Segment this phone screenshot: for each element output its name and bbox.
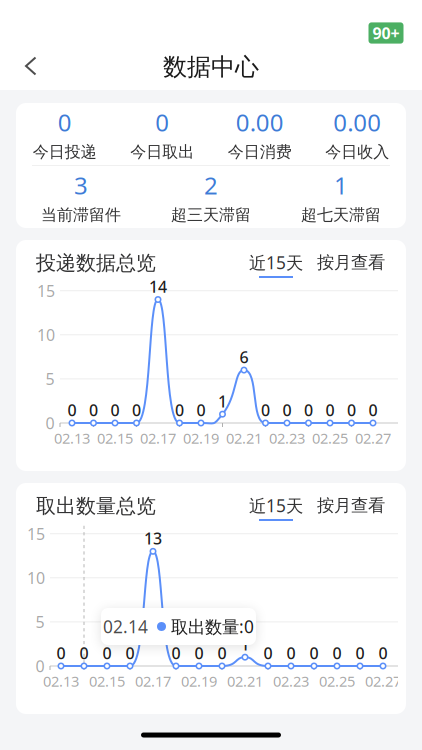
staticText: 0 [125,642,134,664]
button[interactable]: 按月查看 [303,495,385,520]
staticText: 02.19 [183,428,219,448]
staticText: 02.27 [365,671,401,691]
staticText: 0 [263,642,272,664]
staticText: 取出数量总览 [36,494,156,518]
staticText: 02.17 [140,428,176,448]
staticText: 02.19 [181,671,217,691]
staticText: 1 [218,391,227,412]
staticText: 0.00 [333,106,381,138]
staticText: 0 [35,655,44,677]
staticText: 0 [79,642,88,664]
staticText: 02.23 [269,428,305,448]
staticText: 6 [239,346,248,368]
staticText: 02.21 [226,428,262,448]
staticText: 10 [27,567,45,588]
staticText: 02.17 [135,671,171,691]
staticText: 超七天滞留 [301,205,381,225]
staticText: 近15天 [249,494,303,517]
staticText: 数据中心 [163,52,259,82]
staticText: 1 [334,169,348,201]
staticText: 取出数量:0 [171,615,254,638]
button[interactable]: 按月查看 [303,252,385,277]
staticText: 0 [286,642,295,664]
staticText: 0 [309,642,318,664]
staticText: 02.27 [355,428,391,448]
staticText: 02.21 [227,671,263,691]
button[interactable]: Back [9,44,53,88]
staticText: 今日投递 [33,142,97,162]
staticText: 0 [67,399,76,421]
staticText: 2 [204,169,218,201]
staticText: 超三天滞留 [171,205,251,225]
staticText: 0 [355,642,364,664]
staticText: 0.00 [236,106,284,138]
staticText: 0 [304,399,313,421]
staticText: 0 [102,642,111,664]
staticText: 1 [240,634,249,655]
staticText: 0 [282,399,291,421]
button[interactable]: 近15天 [249,494,303,521]
staticText: 15 [37,280,55,301]
staticText: 0 [347,399,356,421]
staticText: 02.25 [319,671,355,691]
staticText: 0 [45,412,54,434]
staticText: 15 [27,523,45,544]
staticText: 今日消费 [228,142,292,162]
staticText: 0 [110,399,119,421]
staticText: 02.15 [89,671,125,691]
staticText: 5 [35,611,44,632]
staticText: 10 [37,324,55,345]
staticText: 0 [171,642,180,664]
staticText: 02.14 [103,615,148,638]
staticText: 今日收入 [325,142,389,162]
staticText: 0 [194,642,203,664]
staticText: 0 [368,399,377,421]
staticText: 按月查看 [317,495,385,516]
staticText: 0 [56,642,65,664]
staticText: 0 [132,399,141,421]
staticText: 近15天 [249,251,303,274]
staticText: 按月查看 [317,252,385,273]
staticText: 02.13 [54,428,90,448]
staticText: 0 [261,399,270,421]
staticText: 90+ [372,22,399,44]
staticText: 今日取出 [130,142,194,162]
staticText: 投递数据总览 [36,251,156,275]
staticText: 0 [196,399,205,421]
staticText: 0 [378,642,387,664]
staticText: 0 [332,642,341,664]
staticText: 02.25 [312,428,348,448]
staticText: 0 [155,106,169,138]
button[interactable]: 近15天 [249,251,303,278]
staticText: 0 [325,399,334,421]
staticText: 5 [45,368,54,389]
staticText: 13 [144,528,162,549]
staticText: 02.13 [43,671,79,691]
staticText: 0 [89,399,98,421]
staticText: 02.23 [273,671,309,691]
staticText: 当前滞留件 [41,205,121,225]
staticText: 3 [74,169,88,201]
staticText: 0 [217,642,226,664]
staticText: 02.15 [97,428,133,448]
staticText: 14 [149,276,167,297]
staticText: 0 [175,399,184,421]
staticText: 0 [58,106,72,138]
